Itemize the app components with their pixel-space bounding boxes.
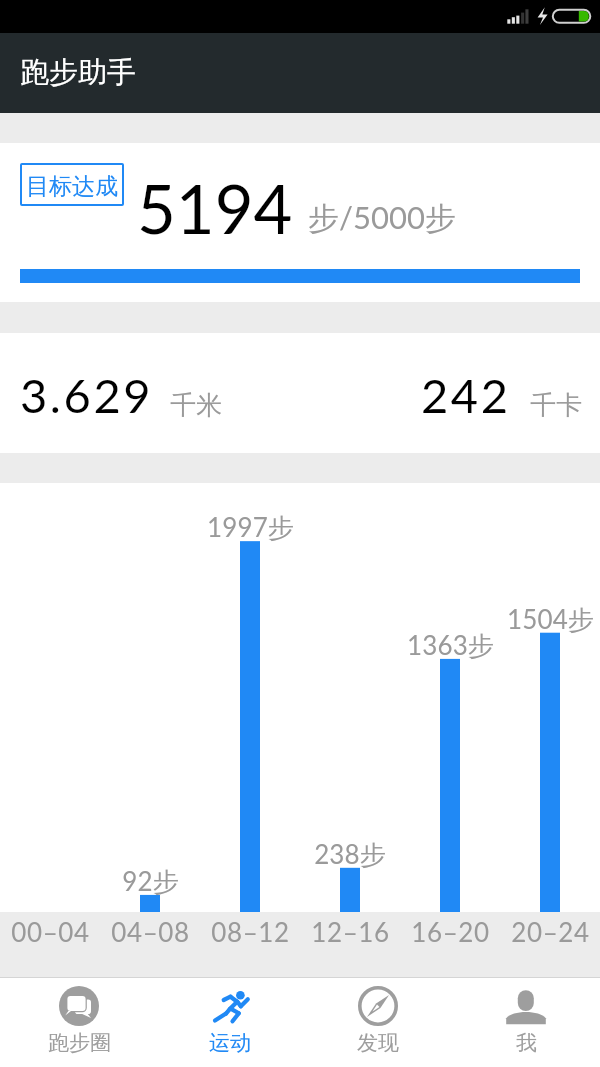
button[interactable]: 目标达成 (20, 163, 124, 206)
staticText: 千米 (170, 389, 222, 422)
button[interactable]: Discover (304, 977, 452, 1067)
staticText: 12–16 (311, 916, 390, 947)
staticText: 运动 (209, 1030, 251, 1056)
button[interactable]: Running circle (5, 977, 153, 1067)
staticText: 跑步圈 (48, 1030, 111, 1056)
button[interactable]: Me (452, 977, 600, 1067)
staticText: 步/5000步 (308, 198, 456, 238)
staticText: 3.629 (20, 367, 154, 423)
staticText: 目标达成 (26, 172, 118, 201)
staticText: 20–24 (511, 916, 590, 947)
staticText: 发现 (357, 1030, 399, 1056)
staticText: 238步 (314, 838, 386, 871)
staticText: 04–08 (111, 916, 190, 947)
staticText: 16–20 (411, 916, 490, 947)
staticText: 跑步助手 (20, 54, 136, 91)
staticText: 5194 (137, 168, 293, 248)
staticText: 我 (516, 1030, 537, 1056)
button[interactable]: Exercise (156, 977, 304, 1067)
staticText: 00–04 (11, 916, 90, 947)
staticText: 92步 (122, 865, 179, 898)
staticText: 08–12 (211, 916, 290, 947)
staticText: 1504步 (507, 603, 594, 636)
staticText: 千卡 (530, 389, 582, 422)
staticText: 1997步 (207, 511, 294, 544)
staticText: 242 (421, 367, 511, 423)
staticText: 1363步 (407, 629, 494, 662)
